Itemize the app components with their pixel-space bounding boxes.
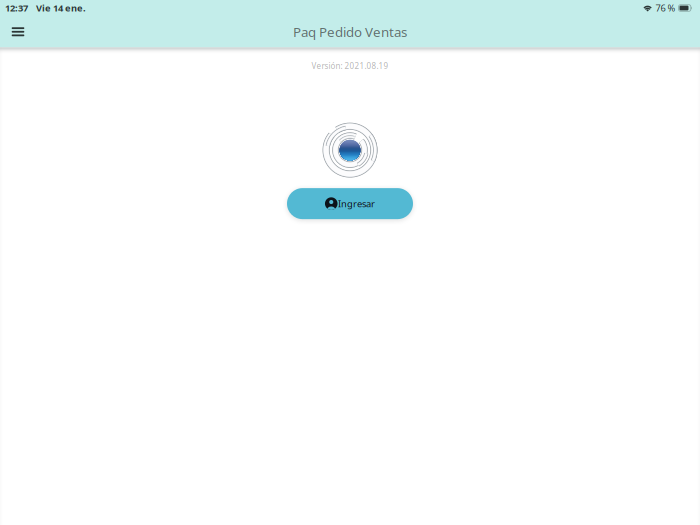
staticText: 76 %	[656, 2, 676, 14]
button[interactable]: Menu	[3, 16, 33, 48]
button[interactable]: Ingresar	[287, 188, 413, 219]
staticText: Paq Pedido Ventas	[293, 23, 407, 41]
staticText: Ingresar	[338, 197, 375, 210]
staticText: Vie 14 ene.	[36, 2, 86, 14]
staticText: 12:37	[5, 2, 28, 14]
staticText: Versión: 2021.08.19	[311, 60, 388, 71]
